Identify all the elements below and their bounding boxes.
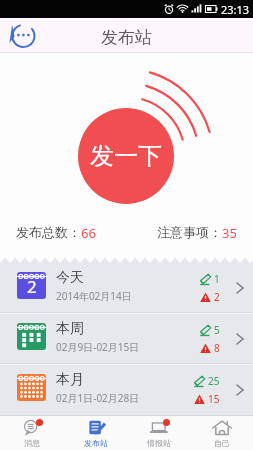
- staticText: 35: [222, 224, 237, 240]
- staticText: 今天: [56, 269, 84, 287]
- staticText: 5: [214, 323, 220, 337]
- staticText: 8: [214, 341, 220, 355]
- staticText: 本周: [56, 320, 84, 338]
- staticText: 02月9日-02月15日: [56, 340, 140, 354]
- staticText: 发布总数：: [16, 224, 81, 240]
- staticText: 消息: [24, 438, 40, 448]
- staticText: 2: [27, 275, 37, 298]
- button[interactable]: 消息: [0, 416, 64, 450]
- staticText: 1: [214, 272, 220, 286]
- button[interactable]: 发布站: [64, 416, 127, 450]
- button[interactable]: 本周: [0, 314, 253, 363]
- staticText: 注意事项：: [157, 224, 222, 240]
- button[interactable]: 自己: [190, 416, 253, 450]
- staticText: 15: [208, 392, 220, 406]
- staticText: 2014年02月14日: [56, 289, 132, 303]
- staticText: 情报站: [147, 438, 171, 448]
- staticText: 本月: [56, 371, 84, 389]
- button[interactable]: App logo: [6, 21, 36, 51]
- staticText: 25: [208, 374, 220, 388]
- button[interactable]: 本月: [0, 365, 253, 414]
- staticText: 66: [81, 224, 96, 240]
- staticText: 自己: [214, 438, 230, 448]
- staticText: 发布站: [84, 438, 108, 448]
- staticText: 23:13: [221, 2, 250, 17]
- button[interactable]: 发一下: [78, 108, 174, 204]
- staticText: 02月1日-02月28日: [56, 391, 140, 405]
- button[interactable]: 2: [0, 263, 253, 312]
- staticText: 发布站: [101, 27, 152, 48]
- button[interactable]: 情报站: [127, 416, 190, 450]
- staticText: 2: [214, 290, 220, 304]
- staticText: 发一下: [90, 141, 162, 171]
